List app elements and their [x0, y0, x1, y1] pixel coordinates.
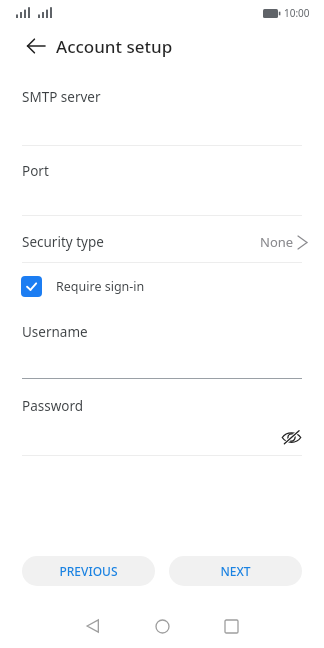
staticText: Security type [22, 233, 104, 251]
staticText: PREVIOUS [59, 563, 118, 579]
staticText: Port [22, 162, 49, 180]
button[interactable]: Home [143, 607, 181, 645]
button[interactable]: Recent apps [212, 607, 250, 645]
button[interactable]: Show password [274, 420, 308, 454]
staticText: 10:00 [284, 6, 310, 20]
staticText: SMTP server [22, 88, 101, 106]
button[interactable]: PREVIOUS [22, 556, 155, 586]
button[interactable]: Security type [0, 222, 324, 262]
staticText: Require sign-in [56, 278, 145, 295]
staticText: Username [22, 323, 88, 341]
button[interactable]: Back [74, 607, 112, 645]
staticText: NEXT [220, 563, 251, 579]
button[interactable]: NEXT [169, 556, 302, 586]
button[interactable]: Require sign-in [0, 270, 324, 302]
staticText: Password [22, 397, 84, 415]
button[interactable]: Back [14, 24, 58, 68]
staticText: Account setup [56, 35, 173, 58]
staticText: None [260, 233, 294, 251]
